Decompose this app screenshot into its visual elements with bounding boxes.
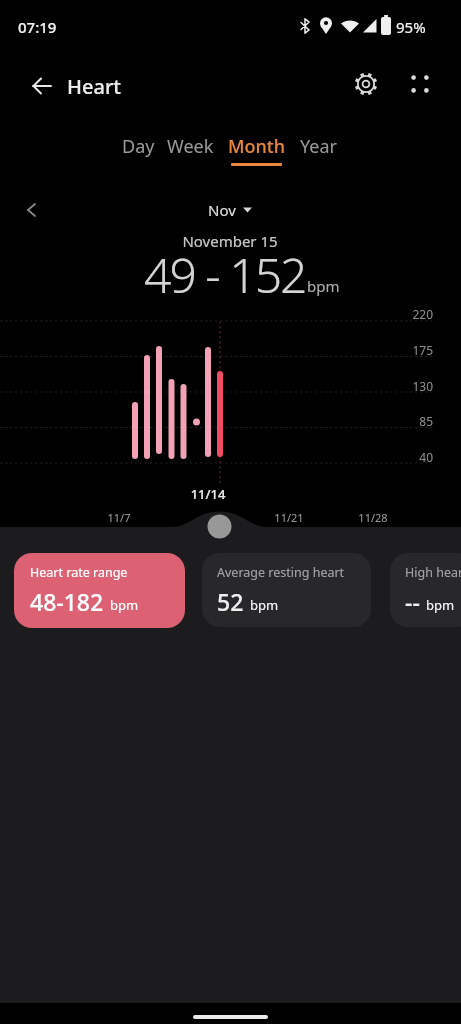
staticText: 175 [393,342,433,358]
button[interactable]: Week [145,134,235,170]
button[interactable] [348,66,384,102]
staticText: 11/7 [94,510,144,525]
staticText: Month [228,134,285,159]
staticText: 49 - 152 [144,242,306,307]
button[interactable] [402,66,438,102]
button[interactable]: Year [273,134,363,170]
staticText: Day [122,134,155,159]
button[interactable]: Month [211,134,301,170]
button[interactable]: Day [93,134,183,170]
staticText: 11/14 [178,485,238,503]
staticText: Heart [67,73,187,100]
staticText: 48-182 [30,586,104,617]
button[interactable]: High heart rate [390,553,461,627]
staticText: November 15 [130,231,330,251]
staticText: 85 [393,413,433,429]
staticText: 07:19 [18,17,78,37]
button[interactable]: Average resting heart [202,553,371,627]
staticText: 11/28 [348,510,398,525]
staticText: Year [300,134,337,159]
button[interactable]: Heart rate range [14,553,185,628]
staticText: bpm [110,596,139,614]
staticText: Heart rate range [30,564,128,581]
staticText: bpm [250,596,279,614]
staticText: 40 [393,449,433,465]
staticText: 11/21 [264,510,314,525]
staticText: Week [167,134,214,159]
staticText: bpm [307,276,367,296]
staticText: 95% [396,17,440,37]
staticText: Nov [208,200,236,220]
staticText: 220 [393,306,433,322]
button[interactable]: Nov [180,198,280,222]
staticText: 52 [217,586,244,617]
staticText: High heart rate [405,564,461,581]
staticText: Average resting heart [217,564,345,581]
staticText: -- [405,586,420,617]
button[interactable] [24,68,60,104]
staticText: bpm [426,596,455,614]
staticText: 130 [393,378,433,394]
